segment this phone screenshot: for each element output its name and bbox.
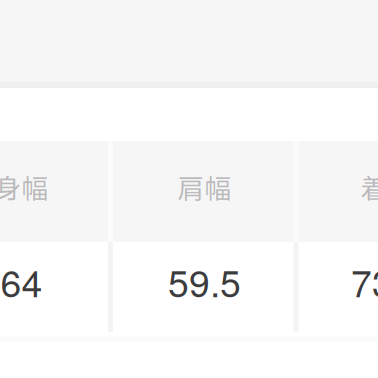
staticText: 73.5 xyxy=(351,254,378,308)
staticText: 64 xyxy=(0,254,42,308)
staticText: 59.5 xyxy=(168,254,241,308)
staticText: 着丈 xyxy=(360,167,378,206)
staticText: 身幅 xyxy=(0,167,48,206)
staticText: 肩幅 xyxy=(177,167,231,206)
